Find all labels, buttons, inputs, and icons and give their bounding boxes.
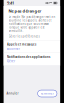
staticText: Le mode Ne pas déranger met en sourdine …: [8, 15, 55, 33]
staticText: Annuler: [7, 92, 19, 95]
button[interactable]: Annuler: [4, 90, 22, 97]
button[interactable]: Appels et messages: [4, 40, 60, 53]
staticText: Autoriser: [7, 47, 20, 50]
staticText: Notifications des applications: [7, 55, 50, 59]
staticText: Gérer: [7, 59, 15, 63]
staticText: 9:41: [7, 0, 14, 6]
button[interactable]: Notifications des applications: [4, 53, 60, 65]
button[interactable]: Terminer: [38, 90, 57, 97]
staticText: Gérer les préférences: [8, 35, 39, 38]
staticText: Terminer: [41, 92, 54, 95]
staticText: Appels et messages: [7, 43, 36, 46]
staticText: Ne pas déranger: [8, 8, 41, 13]
